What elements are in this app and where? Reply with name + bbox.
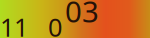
staticText: 0 — [48, 10, 62, 38]
staticText: 11 — [0, 10, 28, 38]
staticText: 03 — [65, 0, 99, 30]
